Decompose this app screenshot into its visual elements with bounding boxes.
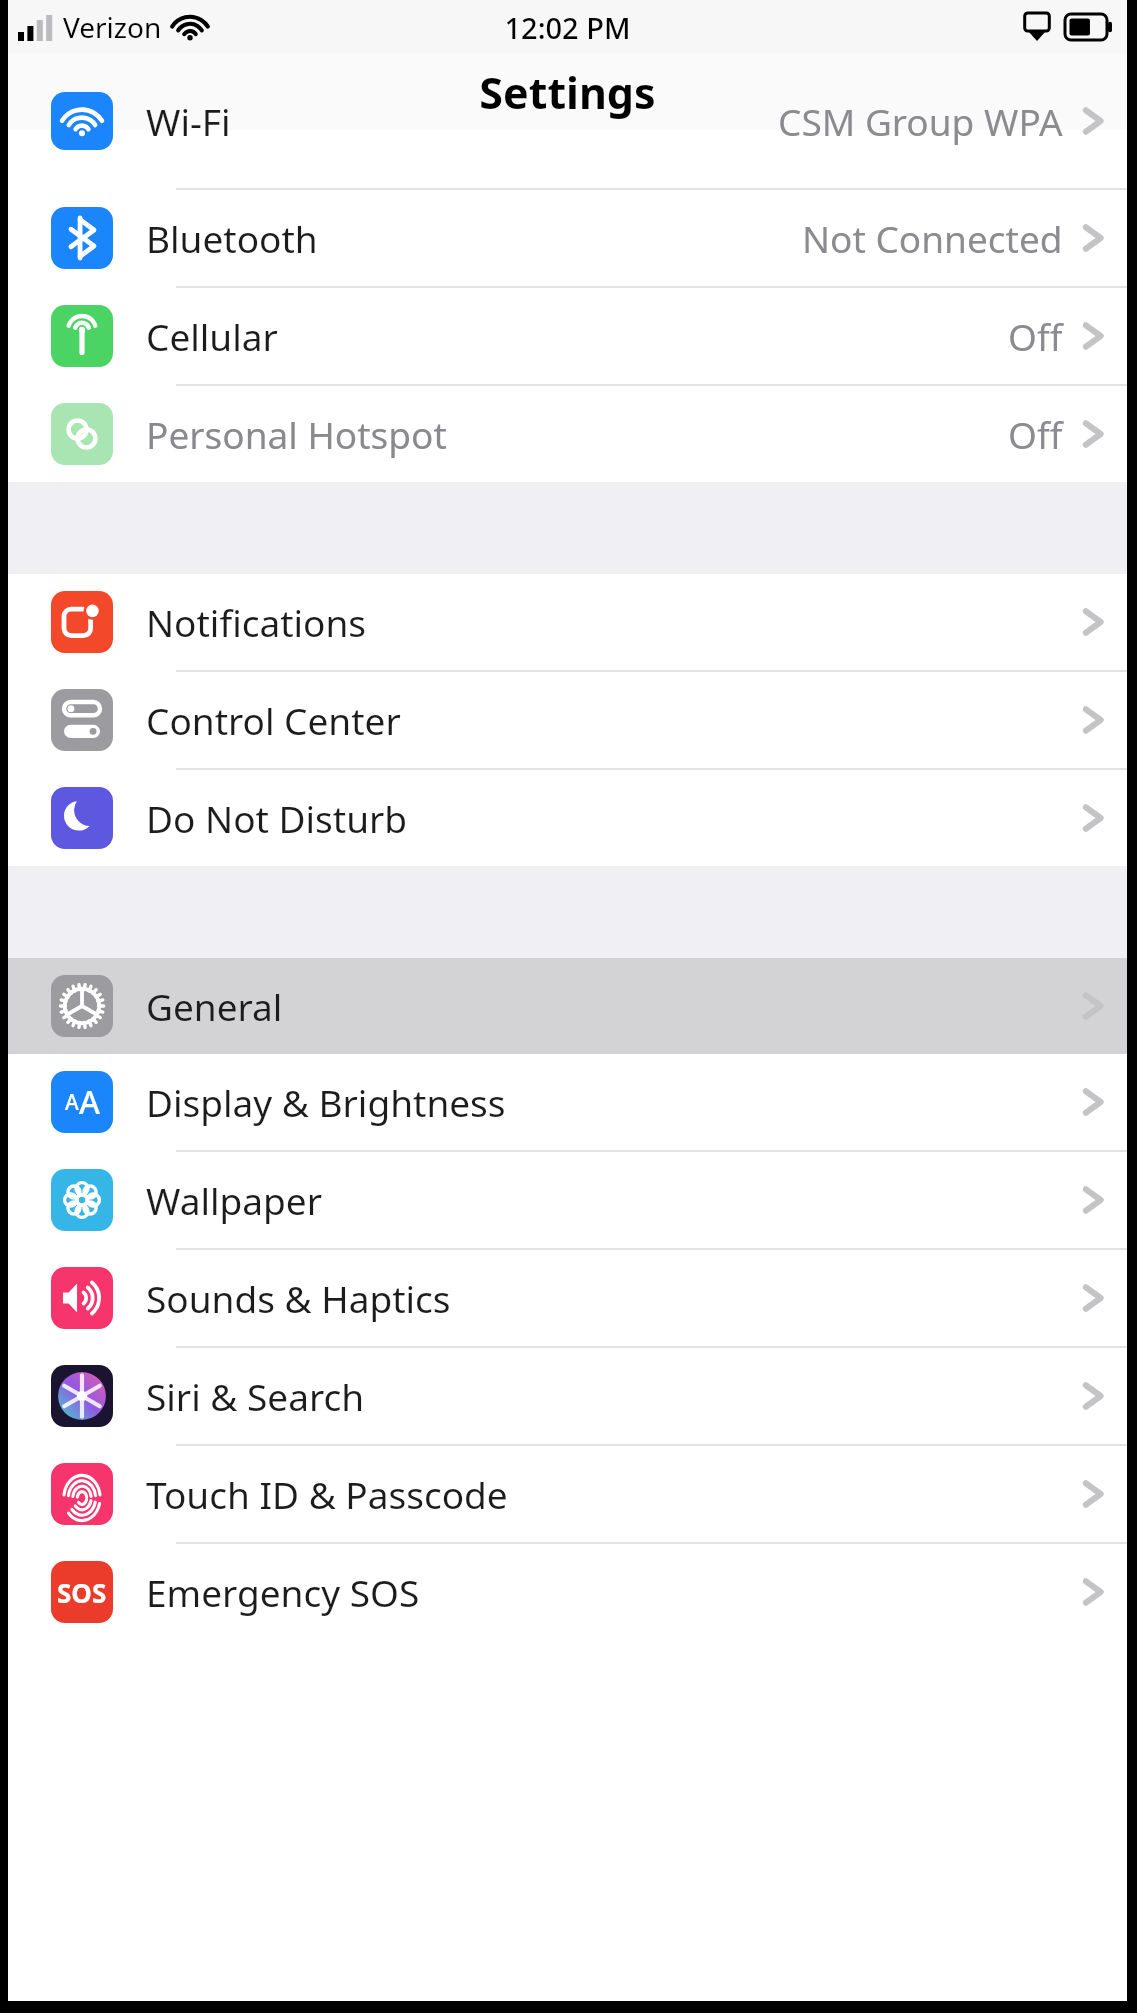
button[interactable]: Personal Hotspot — [8, 386, 1127, 482]
button[interactable]: General — [8, 958, 1127, 1054]
staticText: 12:02 PM — [504, 8, 631, 47]
staticText: SOS — [57, 1575, 107, 1610]
staticText: Do Not Disturb — [146, 793, 408, 843]
button[interactable]: Wallpaper — [8, 1152, 1127, 1248]
staticText: Notifications — [146, 597, 367, 647]
staticText: Siri & Search — [146, 1371, 365, 1421]
button[interactable]: Do Not Disturb — [8, 770, 1127, 866]
staticText: Display & Brightness — [146, 1077, 506, 1127]
staticText: General — [146, 981, 283, 1031]
button[interactable]: Control Center — [8, 672, 1127, 768]
staticText: Wallpaper — [146, 1175, 322, 1225]
staticText: Touch ID & Passcode — [146, 1469, 508, 1519]
staticText: Control Center — [146, 695, 401, 745]
staticText: Wi-Fi — [146, 96, 231, 146]
button[interactable]: Wi-Fi — [8, 130, 1127, 188]
button[interactable]: Touch ID & Passcode — [8, 1446, 1127, 1542]
staticText: Bluetooth — [146, 213, 318, 263]
staticText: Off — [1008, 311, 1063, 361]
staticText: Personal Hotspot — [146, 409, 447, 459]
button[interactable]: SOS — [8, 1544, 1127, 1640]
button[interactable]: Siri & Search — [8, 1348, 1127, 1444]
staticText: Emergency SOS — [146, 1567, 420, 1617]
staticText: Verizon — [63, 8, 162, 46]
button[interactable]: Sounds & Haptics — [8, 1250, 1127, 1346]
staticText: Cellular — [146, 311, 278, 361]
staticText: A — [65, 1088, 79, 1117]
staticText: Settings — [479, 63, 656, 122]
staticText: Not Connected — [802, 213, 1063, 263]
staticText: A — [79, 1080, 100, 1124]
staticText: Off — [1008, 409, 1063, 459]
button[interactable]: Notifications — [8, 574, 1127, 670]
button[interactable]: A — [8, 1054, 1127, 1150]
button[interactable]: Cellular — [8, 288, 1127, 384]
staticText: CSM Group WPA — [778, 96, 1063, 146]
staticText: Sounds & Haptics — [146, 1273, 451, 1323]
button[interactable]: Bluetooth — [8, 190, 1127, 286]
